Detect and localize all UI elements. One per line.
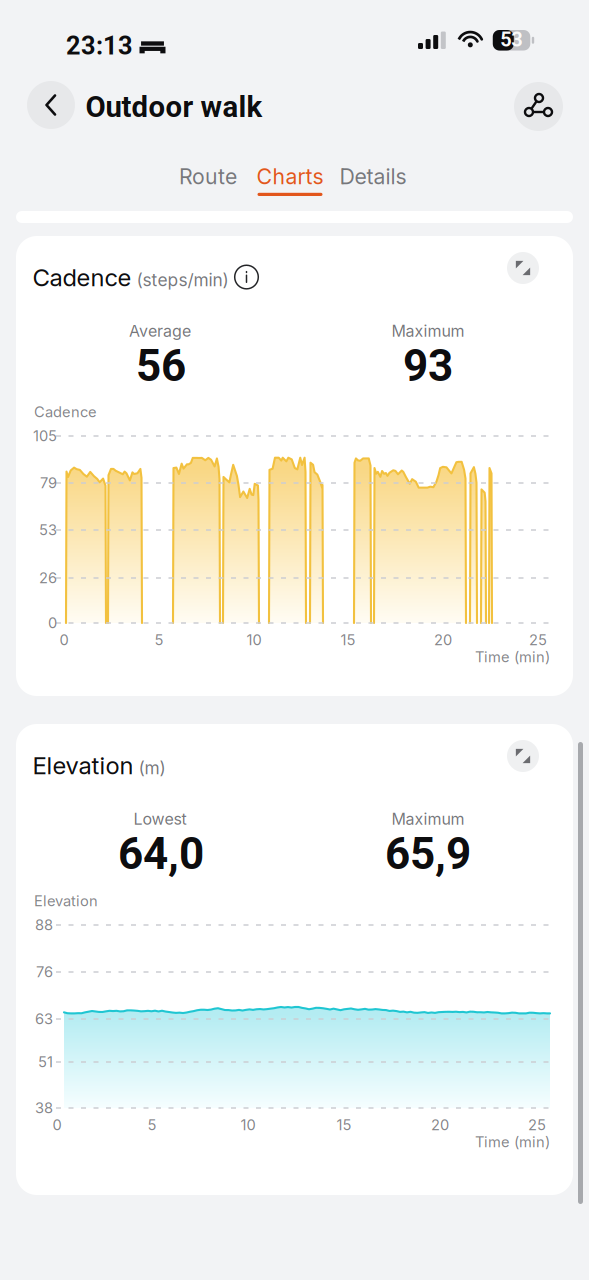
staticText: Outdoor walk bbox=[85, 90, 262, 124]
staticText: (steps/min) bbox=[136, 270, 228, 291]
staticText: 20 bbox=[431, 1116, 449, 1134]
staticText: 79 bbox=[40, 474, 57, 492]
staticText: Maximum bbox=[391, 321, 464, 341]
staticText: 56 bbox=[136, 340, 186, 392]
staticText: 0 bbox=[59, 631, 68, 649]
staticText: 23:13 bbox=[66, 31, 133, 61]
staticText: 88 bbox=[35, 916, 53, 934]
staticText: 0 bbox=[48, 614, 57, 632]
button[interactable]: About Cadence bbox=[232, 263, 260, 291]
staticText: 0 bbox=[52, 1116, 61, 1134]
button[interactable]: Outdoor walk bbox=[79, 90, 269, 124]
staticText: Details bbox=[339, 164, 406, 189]
staticText: Lowest bbox=[133, 809, 186, 829]
staticText: 10 bbox=[246, 631, 261, 649]
button[interactable]: Route bbox=[148, 163, 268, 196]
staticText: 15 bbox=[340, 631, 355, 649]
staticText: Average bbox=[129, 321, 191, 341]
staticText: 76 bbox=[36, 963, 53, 981]
staticText: Charts bbox=[256, 164, 323, 189]
button[interactable]: Details bbox=[313, 163, 433, 196]
staticText: 53 bbox=[500, 28, 522, 51]
staticText: 26 bbox=[39, 569, 57, 587]
button[interactable]: Back bbox=[27, 80, 75, 130]
staticText: 15 bbox=[336, 1116, 351, 1134]
staticText: Cadence bbox=[32, 263, 131, 292]
staticText: Time (min) bbox=[475, 648, 550, 666]
staticText: 105 bbox=[33, 427, 57, 445]
staticText: 64,0 bbox=[118, 828, 204, 880]
staticText: Route bbox=[179, 164, 237, 189]
staticText: Maximum bbox=[391, 809, 464, 829]
staticText: Time (min) bbox=[475, 1133, 550, 1151]
staticText: 10 bbox=[240, 1116, 255, 1134]
staticText: Elevation bbox=[32, 751, 133, 780]
staticText: (m) bbox=[138, 758, 165, 779]
button[interactable]: Expand Elevation chart bbox=[507, 740, 539, 772]
staticText: Cadence bbox=[34, 403, 97, 421]
staticText: 5 bbox=[154, 631, 163, 649]
staticText: 20 bbox=[434, 631, 452, 649]
staticText: 93 bbox=[403, 340, 453, 392]
button[interactable]: Share bbox=[514, 82, 563, 131]
button[interactable]: Charts bbox=[230, 163, 350, 196]
staticText: 63 bbox=[35, 1010, 53, 1028]
staticText: Elevation bbox=[34, 892, 98, 910]
staticText: 65,9 bbox=[385, 828, 471, 880]
staticText: 25 bbox=[529, 631, 547, 649]
staticText: 51 bbox=[38, 1053, 53, 1071]
staticText: 25 bbox=[528, 1116, 546, 1134]
button[interactable]: Expand Cadence chart bbox=[507, 252, 539, 284]
staticText: 53 bbox=[39, 521, 57, 539]
staticText: 38 bbox=[35, 1099, 53, 1117]
staticText: 5 bbox=[147, 1116, 156, 1134]
